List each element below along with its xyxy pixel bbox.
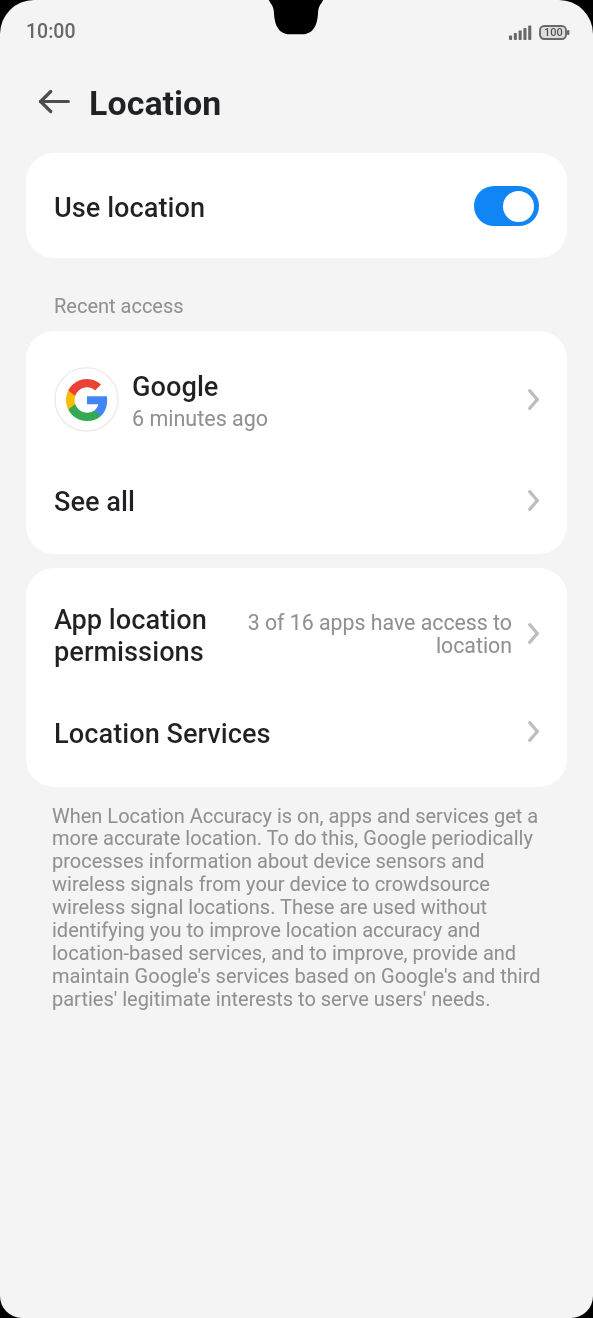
staticText: 6 minutes ago	[132, 406, 269, 431]
button[interactable]: Location Services	[26, 699, 567, 764]
staticText: Location	[89, 83, 222, 123]
staticText: Location Services	[54, 718, 271, 750]
staticText: See all	[54, 486, 136, 518]
staticText: Google	[132, 371, 219, 403]
staticText: When Location Accuracy is on, apps and s…	[52, 804, 543, 1011]
button[interactable]: App location permissions	[26, 568, 567, 699]
staticText: 100	[544, 26, 563, 39]
button[interactable]: Use location toggle	[474, 186, 539, 226]
staticText: 10:00	[26, 20, 76, 43]
staticText: Recent access	[54, 294, 184, 317]
button[interactable]: Use location	[26, 153, 567, 258]
button[interactable]: Google	[26, 331, 567, 468]
button[interactable]: See all	[26, 468, 567, 532]
button[interactable]: Back	[28, 75, 81, 128]
staticText: App location permissions	[54, 604, 207, 668]
staticText: 3 of 16 apps have access to location	[244, 610, 512, 658]
staticText: Use location	[54, 192, 206, 224]
